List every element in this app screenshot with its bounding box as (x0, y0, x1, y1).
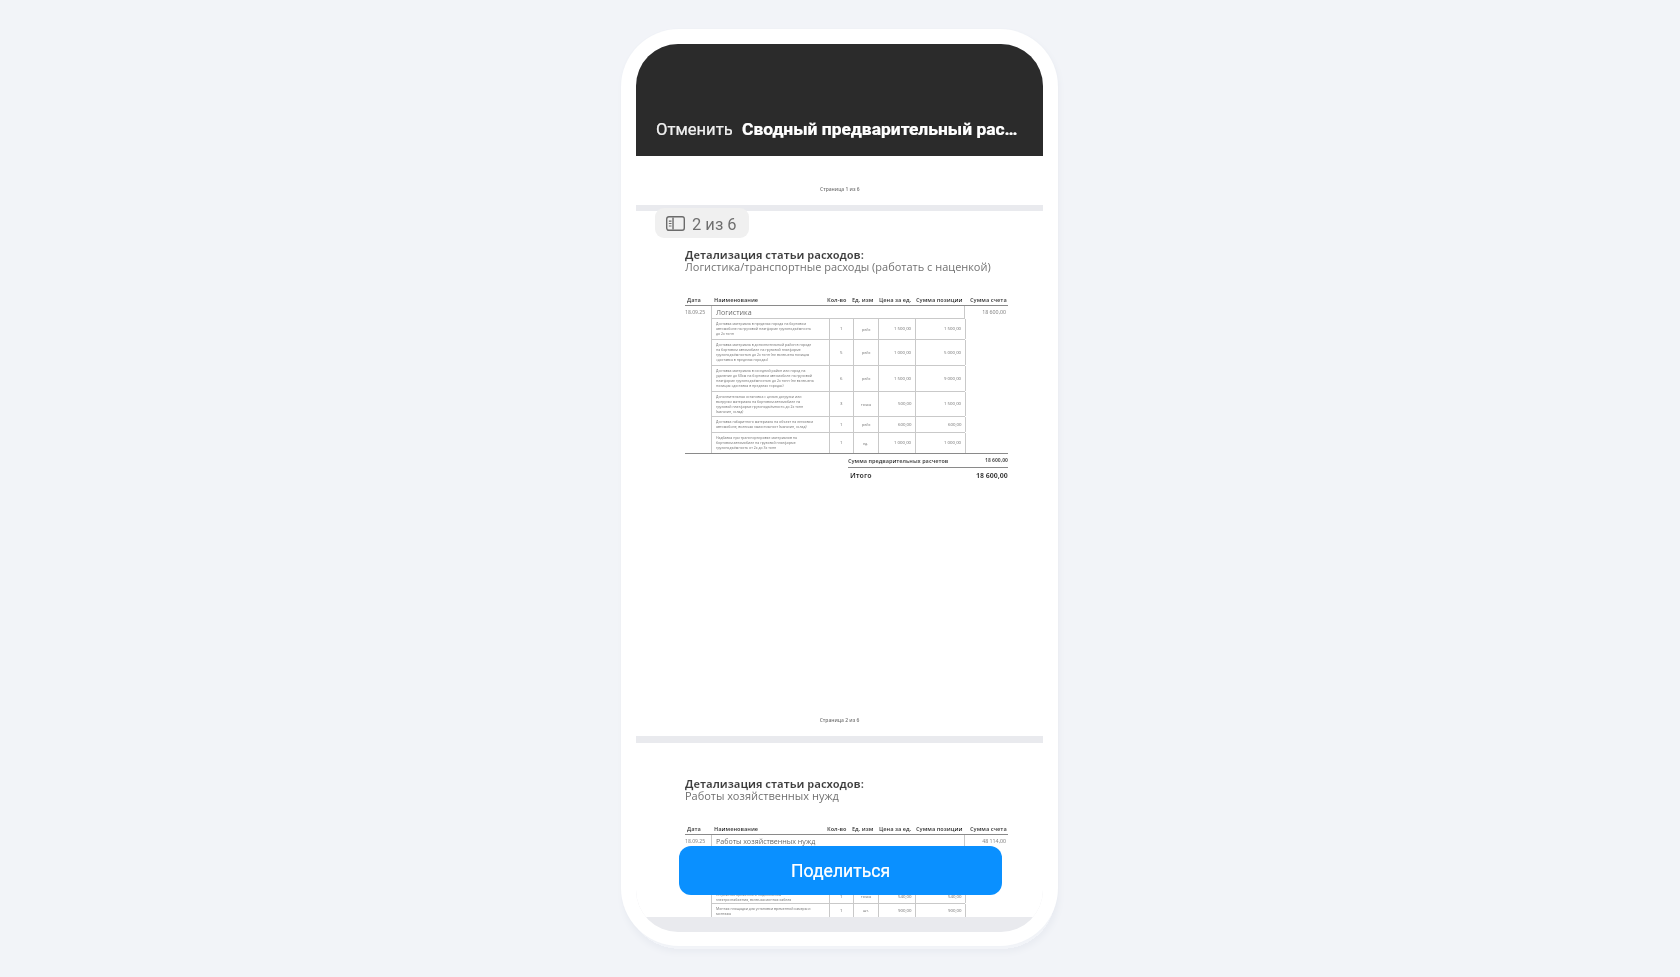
staticText: рейс (862, 422, 871, 427)
other: Pages (666, 216, 685, 231)
staticText: Доставка материала в пределах города на … (716, 321, 814, 336)
staticText: шт. (863, 866, 869, 871)
staticText: Устройство временного подключения электр… (716, 892, 814, 902)
staticText: Дополнительная остановка с целью догрузк… (716, 394, 814, 414)
staticText: Доставка материала в дополнительный райо… (716, 342, 814, 362)
staticText: Отменить (656, 118, 733, 140)
staticText: Монтаж площадки для установки временной … (716, 906, 814, 916)
staticText: Монтаж временного ограждения территории … (716, 864, 814, 869)
staticText: Сумма позиции (916, 825, 963, 832)
staticText: 9 000,00 (944, 376, 962, 382)
staticText: Надбавка при транспортировке материалов … (716, 435, 814, 450)
staticText: рейс (862, 327, 871, 332)
button[interactable]: Pages (655, 208, 749, 238)
staticText: Сумма предварительных расчетов (848, 457, 949, 464)
staticText: 1 500,00 (894, 376, 912, 382)
staticText: шт. (863, 908, 869, 913)
staticText: 540,00 (948, 894, 962, 900)
staticText: Страница 1 из 6 (820, 186, 860, 192)
staticText: 1 (840, 866, 843, 872)
staticText: 1 000,00 (944, 440, 962, 446)
staticText: 1 (840, 908, 843, 914)
staticText: Наименование (714, 825, 829, 832)
staticText: Детализация статьи расходов: (685, 249, 864, 261)
staticText: 1 (840, 894, 843, 900)
staticText: Страница 2 из 6 (636, 717, 1043, 723)
staticText: Работы хозяйственных нужд (716, 837, 964, 846)
staticText: 600,00 (948, 422, 962, 428)
staticText: Наименование (714, 296, 829, 303)
staticText: Сводный предварительный рас… (742, 117, 1018, 140)
staticText: Кол-во (827, 296, 847, 303)
staticText: Доставка материала в соседний район или … (716, 368, 814, 388)
staticText: 5 000,00 (944, 350, 962, 356)
staticText: 900,00 (948, 908, 962, 914)
staticText: Сумма счета (970, 825, 1007, 832)
staticText: Логистика/транспортные расходы (работать… (685, 261, 991, 273)
staticText: 540,00 (898, 894, 912, 900)
staticText: 1 500,00 (944, 401, 962, 407)
staticText: 18 600,00 (965, 309, 1006, 316)
button[interactable]: Поделиться (679, 846, 1002, 895)
staticText: 5 (840, 350, 843, 356)
staticText: 1 (840, 422, 843, 428)
staticText: 18.09.25 (685, 309, 711, 316)
staticText: 18 600,00 (976, 471, 1008, 480)
staticText: 18 600,00 (985, 457, 1008, 464)
staticText: 500,00 (898, 401, 912, 407)
staticText: 1 500,00 (944, 326, 962, 332)
staticText: Сумма позиции (916, 296, 963, 303)
staticText: 6 (840, 376, 843, 382)
staticText: Поделиться (791, 859, 891, 882)
staticText: Цена за ед. (879, 296, 912, 303)
staticText: Цена за ед. (879, 825, 912, 832)
staticText: 1 (840, 440, 843, 446)
staticText: Ед. изм (852, 825, 874, 832)
staticText: 2 из 6 (692, 213, 737, 234)
staticText: 48 114,00 (965, 838, 1006, 845)
staticText: Устройство временного освещения на объек… (716, 878, 814, 888)
staticText: 18.09.25 (685, 838, 711, 845)
staticText: Сумма счета (970, 296, 1007, 303)
staticText: Кол-во (827, 825, 847, 832)
button[interactable]: Отменить (656, 118, 733, 140)
staticText: Логистика (716, 308, 964, 317)
staticText: 1 500,00 (894, 326, 912, 332)
staticText: точка (861, 402, 872, 407)
staticText: 1 000,00 (894, 350, 912, 356)
staticText: Ед. изм (852, 296, 874, 303)
staticText: Доставка габаритного материала на объект… (716, 419, 814, 429)
staticText: 900,00 (898, 908, 912, 914)
staticText: рейс (862, 376, 871, 381)
staticText: 3 (840, 401, 843, 407)
staticText: Дата (687, 825, 711, 832)
staticText: 1 (840, 326, 843, 332)
staticText: ед. (863, 441, 869, 446)
staticText: Детализация статьи расходов: (685, 778, 864, 790)
staticText: Дата (687, 296, 711, 303)
staticText: 600,00 (898, 422, 912, 428)
staticText: Итого (850, 471, 872, 480)
staticText: рейс (862, 350, 871, 355)
staticText: 1 000,00 (894, 440, 912, 446)
staticText: точка (861, 894, 872, 899)
staticText: Работы хозяйственных нужд (685, 790, 839, 802)
